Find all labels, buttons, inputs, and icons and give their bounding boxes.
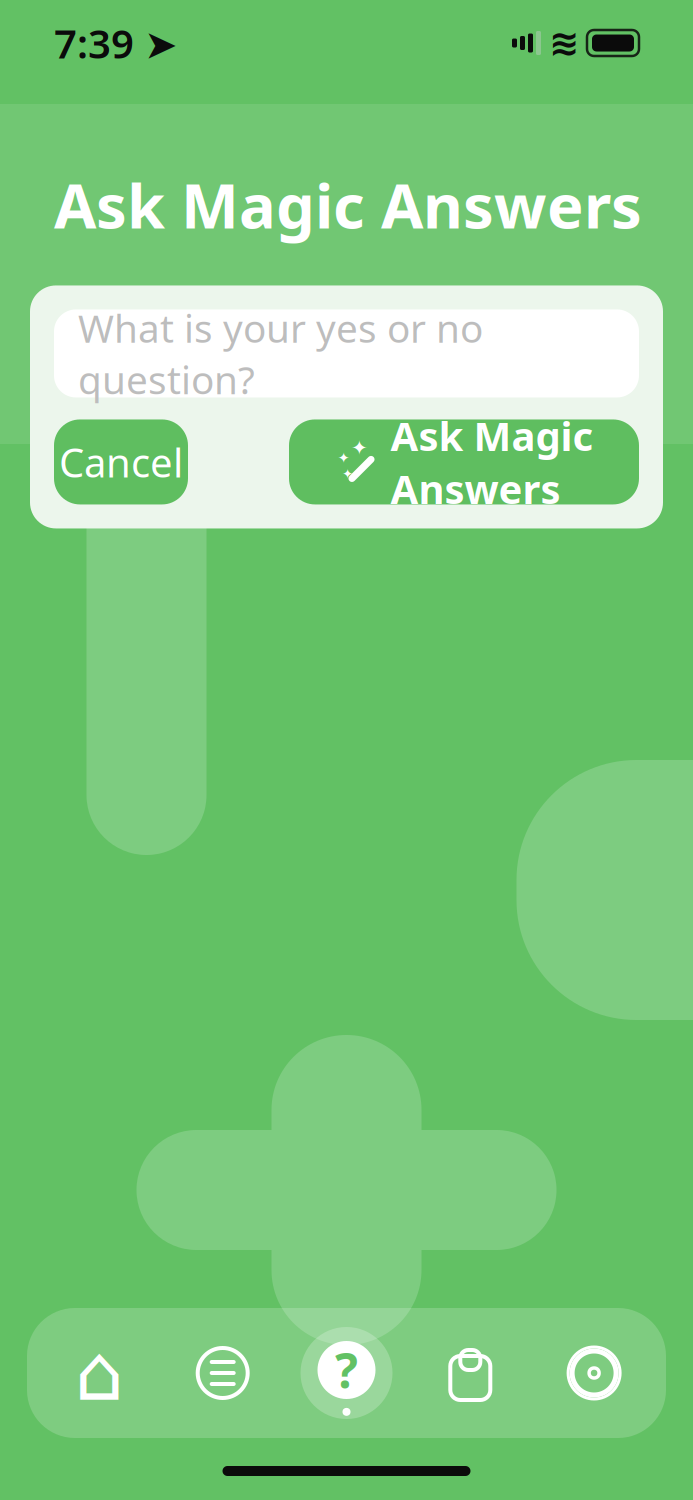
button[interactable]: ✦: [289, 419, 639, 504]
staticText: Cancel: [59, 435, 183, 488]
button[interactable]: Shop: [408, 1345, 532, 1401]
staticText: ≋: [549, 23, 579, 63]
staticText: ✦: [342, 466, 353, 481]
staticText: ?: [335, 1338, 358, 1402]
staticText: What is your yes or no question?: [78, 302, 483, 405]
button[interactable]: Settings: [532, 1345, 656, 1401]
button[interactable]: Ask Magic Answers: [285, 1327, 408, 1419]
staticText: ✦: [337, 450, 349, 466]
button[interactable]: Home: [37, 1345, 161, 1401]
button[interactable]: Entries: [161, 1345, 285, 1401]
button[interactable]: Cancel: [54, 419, 188, 504]
staticText: Ask Magic Answers: [54, 164, 642, 245]
staticText: ✦: [351, 437, 368, 459]
staticText: ⌂: [74, 1329, 123, 1417]
staticText: Ask Magic Answers: [390, 409, 593, 515]
staticText: 7:39 ➤: [54, 16, 178, 69]
